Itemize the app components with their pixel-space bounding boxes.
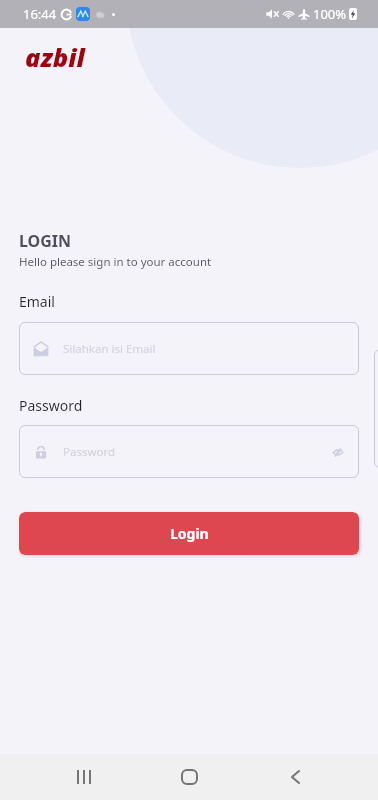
button[interactable]: Password (19, 425, 359, 478)
button[interactable]: Recents (58, 754, 110, 800)
staticText: LOGIN (19, 230, 72, 252)
staticText: Password (63, 444, 116, 460)
staticText: Login (170, 524, 209, 543)
other: Toggle password visibility (333, 448, 343, 457)
staticText: Email (19, 292, 55, 311)
button[interactable]: Home (163, 754, 215, 800)
staticText: azbil (25, 40, 85, 75)
button[interactable]: Silahkan isi Email (19, 322, 359, 375)
staticText: 100% (313, 5, 347, 23)
staticText: Hello please sign in to your account (19, 254, 212, 270)
button[interactable]: Login (19, 512, 359, 555)
staticText: Silahkan isi Email (63, 341, 156, 357)
staticText: 16:44 (23, 5, 57, 23)
button[interactable]: Back (269, 754, 321, 800)
staticText: Password (19, 396, 83, 415)
